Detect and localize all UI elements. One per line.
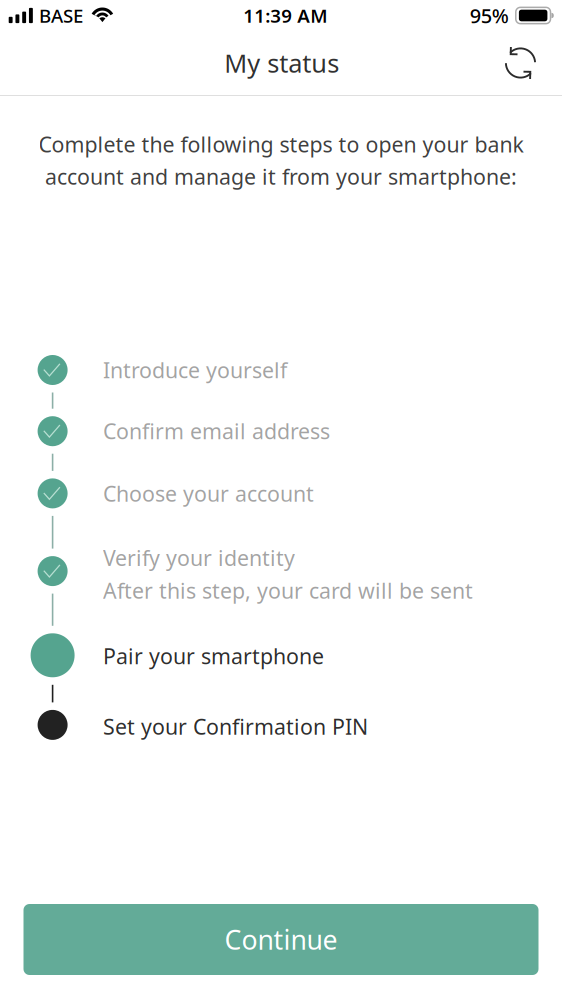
staticText: Continue — [224, 922, 337, 957]
staticText: Choose your account — [103, 479, 314, 508]
staticText: Set your Confirmation PIN — [103, 712, 368, 741]
staticText: account and manage it from your smartpho… — [45, 162, 517, 191]
button[interactable]: Confirm email address — [103, 411, 523, 451]
button[interactable]: Pair your smartphone — [103, 634, 523, 678]
staticText: Complete the following steps to open you… — [38, 130, 523, 158]
staticText: Confirm email address — [103, 417, 330, 445]
button[interactable]: Introduce yourself — [103, 350, 523, 390]
staticText: My status — [224, 46, 339, 80]
button[interactable]: Set your Confirmation PIN — [103, 706, 523, 746]
staticText: BASE — [39, 3, 83, 28]
button[interactable]: Refresh — [491, 36, 549, 90]
staticText: After this step, your card will be sent — [103, 576, 473, 605]
staticText: 95% — [470, 2, 509, 29]
staticText: Verify your identity — [103, 543, 295, 572]
staticText: Introduce yourself — [103, 356, 287, 384]
button[interactable]: Verify your identity — [103, 543, 523, 605]
staticText: 11:39 AM — [243, 3, 327, 28]
staticText: Pair your smartphone — [103, 642, 324, 670]
button[interactable]: Choose your account — [103, 473, 523, 513]
button[interactable]: Continue — [23, 904, 538, 975]
